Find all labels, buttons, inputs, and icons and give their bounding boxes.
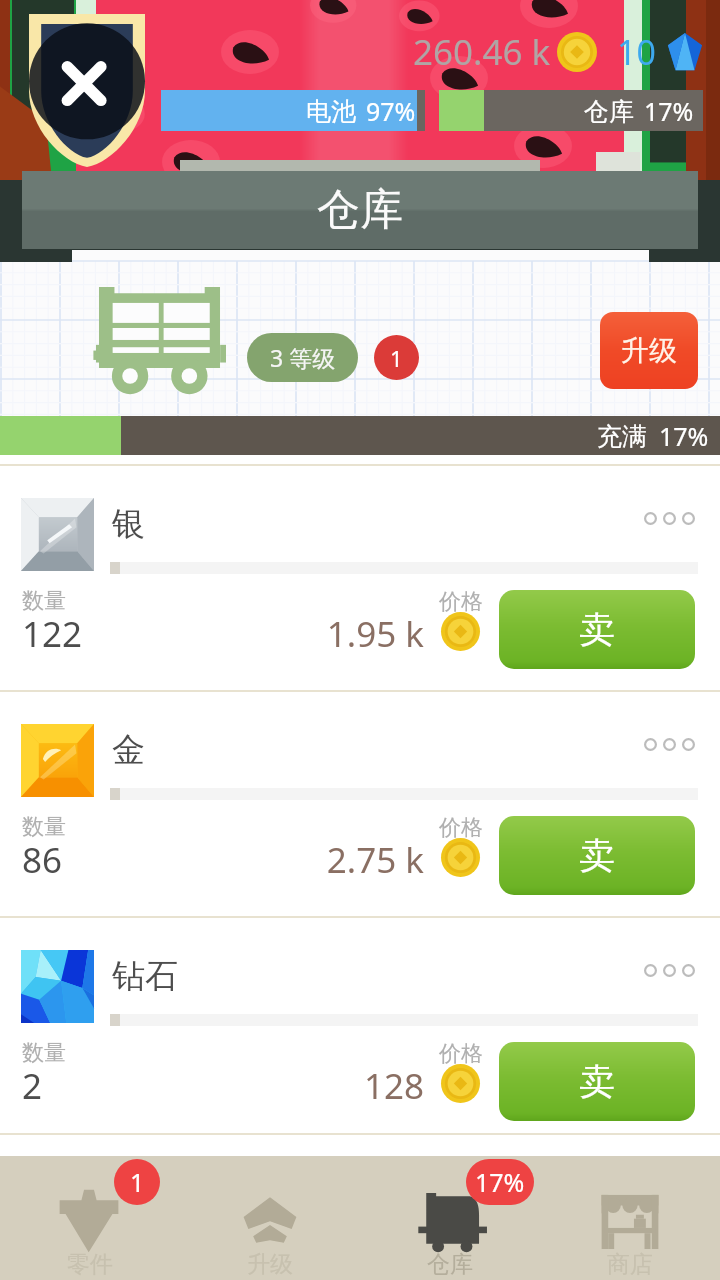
staticText: 金: [112, 729, 145, 771]
staticText: 260.46 k: [413, 28, 551, 76]
button[interactable]: 卖: [499, 816, 695, 895]
staticText: 零件: [67, 1250, 113, 1279]
button[interactable]: More options: [644, 964, 695, 977]
button[interactable]: 卖: [499, 590, 695, 669]
staticText: 价格: [439, 814, 483, 842]
staticText: 钻石: [112, 955, 178, 997]
staticText: 17%: [659, 419, 709, 453]
staticText: 86: [22, 836, 63, 884]
button[interactable]: 钻石: [0, 907, 720, 1133]
button[interactable]: 银: [0, 455, 720, 681]
staticText: 2: [22, 1062, 43, 1110]
staticText: 3 等级: [270, 342, 336, 373]
button[interactable]: 仓库: [22, 171, 698, 249]
button[interactable]: 商店: [540, 1156, 720, 1280]
button[interactable]: 仓库: [360, 1156, 540, 1280]
staticText: 17%: [644, 94, 694, 128]
button[interactable]: 卖: [499, 1042, 695, 1121]
staticText: 1.95 k: [190, 610, 424, 658]
staticText: 充满: [597, 421, 647, 452]
staticText: 价格: [439, 588, 483, 616]
staticText: 卖: [579, 833, 615, 878]
staticText: 1: [390, 343, 403, 373]
staticText: 1: [130, 1165, 145, 1199]
staticText: 银: [112, 503, 145, 545]
staticText: 商店: [607, 1250, 653, 1279]
staticText: 128: [190, 1062, 424, 1110]
staticText: 17%: [475, 1165, 525, 1199]
button[interactable]: 升级: [600, 312, 698, 389]
staticText: 升级: [247, 1250, 293, 1279]
staticText: 卖: [579, 1059, 615, 1104]
staticText: 升级: [621, 333, 677, 368]
staticText: 122: [22, 610, 83, 658]
button[interactable]: 升级: [180, 1156, 360, 1280]
staticText: 数量: [22, 813, 66, 841]
staticText: 价格: [439, 1040, 483, 1068]
staticText: 2.75 k: [190, 836, 424, 884]
staticText: 仓库: [584, 96, 634, 127]
staticText: 数量: [22, 1039, 66, 1067]
staticText: 10: [617, 29, 656, 75]
button[interactable]: More options: [644, 512, 695, 525]
button[interactable]: 零件: [0, 1156, 180, 1280]
button[interactable]: More options: [644, 738, 695, 751]
staticText: 卖: [579, 607, 615, 652]
button[interactable]: 金: [0, 681, 720, 907]
staticText: 仓库: [317, 183, 403, 237]
staticText: 电池: [306, 96, 356, 127]
button[interactable]: Close: [29, 14, 145, 167]
staticText: 数量: [22, 587, 66, 615]
staticText: 97%: [366, 94, 416, 128]
button[interactable]: 3 等级: [247, 333, 358, 382]
staticText: 仓库: [427, 1250, 473, 1279]
